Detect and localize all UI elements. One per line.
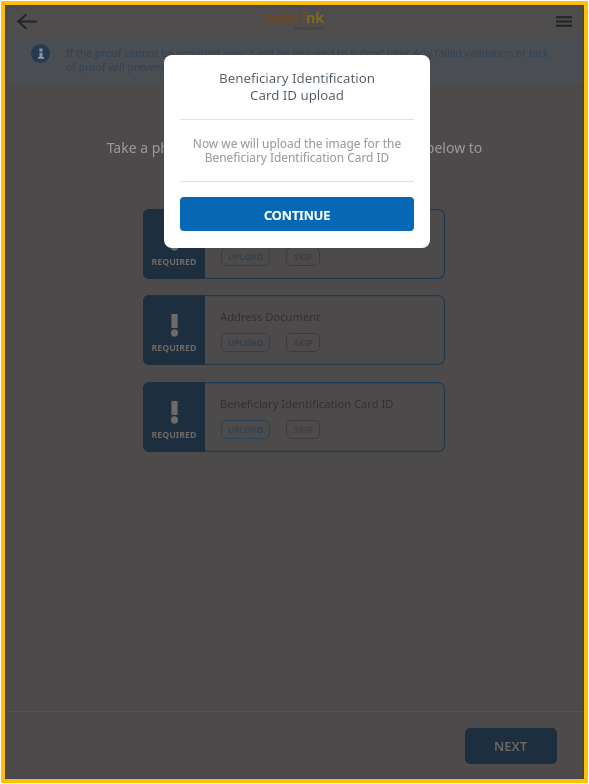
button[interactable]: UPLOAD <box>221 333 270 352</box>
staticText: If the proof cannot be provided now, it … <box>66 46 558 74</box>
staticText: Proof of Identity <box>220 223 306 238</box>
staticText: UPLOAD <box>228 337 264 349</box>
staticText: Beneficiary Identification Card ID <box>220 396 394 411</box>
button[interactable]: CONTINUE <box>180 197 414 231</box>
button[interactable]: REQUIRED <box>143 209 445 279</box>
staticText: CONTINUE <box>264 206 331 223</box>
button[interactable]: REQUIRED <box>143 295 445 365</box>
button[interactable]: SKIP <box>286 247 320 266</box>
staticText: Address Document <box>220 309 321 324</box>
button[interactable]: SKIP <box>286 420 320 439</box>
staticText: nk <box>306 8 325 27</box>
staticText: REQUIRED <box>143 256 205 268</box>
staticText: REQUIRED <box>143 342 205 354</box>
staticText: SKIP <box>294 424 313 436</box>
staticText: SKIP <box>294 251 313 263</box>
staticText: SKIP <box>294 337 313 349</box>
staticText: REQUIRED <box>143 429 205 441</box>
staticText: NEXT <box>494 737 528 755</box>
button[interactable]: UPLOAD <box>221 247 270 266</box>
button[interactable]: SKIP <box>286 333 320 352</box>
button[interactable]: Back <box>13 7 41 35</box>
button[interactable]: Menu <box>551 8 577 34</box>
staticText: Beneficiary Identification Card ID uploa… <box>164 69 430 104</box>
staticText: UPLOAD <box>228 424 264 436</box>
staticText: Take a photo of each of the required doc… <box>0 138 589 178</box>
staticText: SUPPORT SYSTEM <box>294 26 324 31</box>
staticText: UPLOAD <box>228 251 264 263</box>
staticText: SafeL <box>263 8 302 27</box>
button[interactable]: REQUIRED <box>143 382 445 452</box>
button[interactable]: NEXT <box>465 728 557 764</box>
staticText: Now we will upload the image for the Ben… <box>164 135 430 165</box>
button[interactable]: UPLOAD <box>221 420 270 439</box>
